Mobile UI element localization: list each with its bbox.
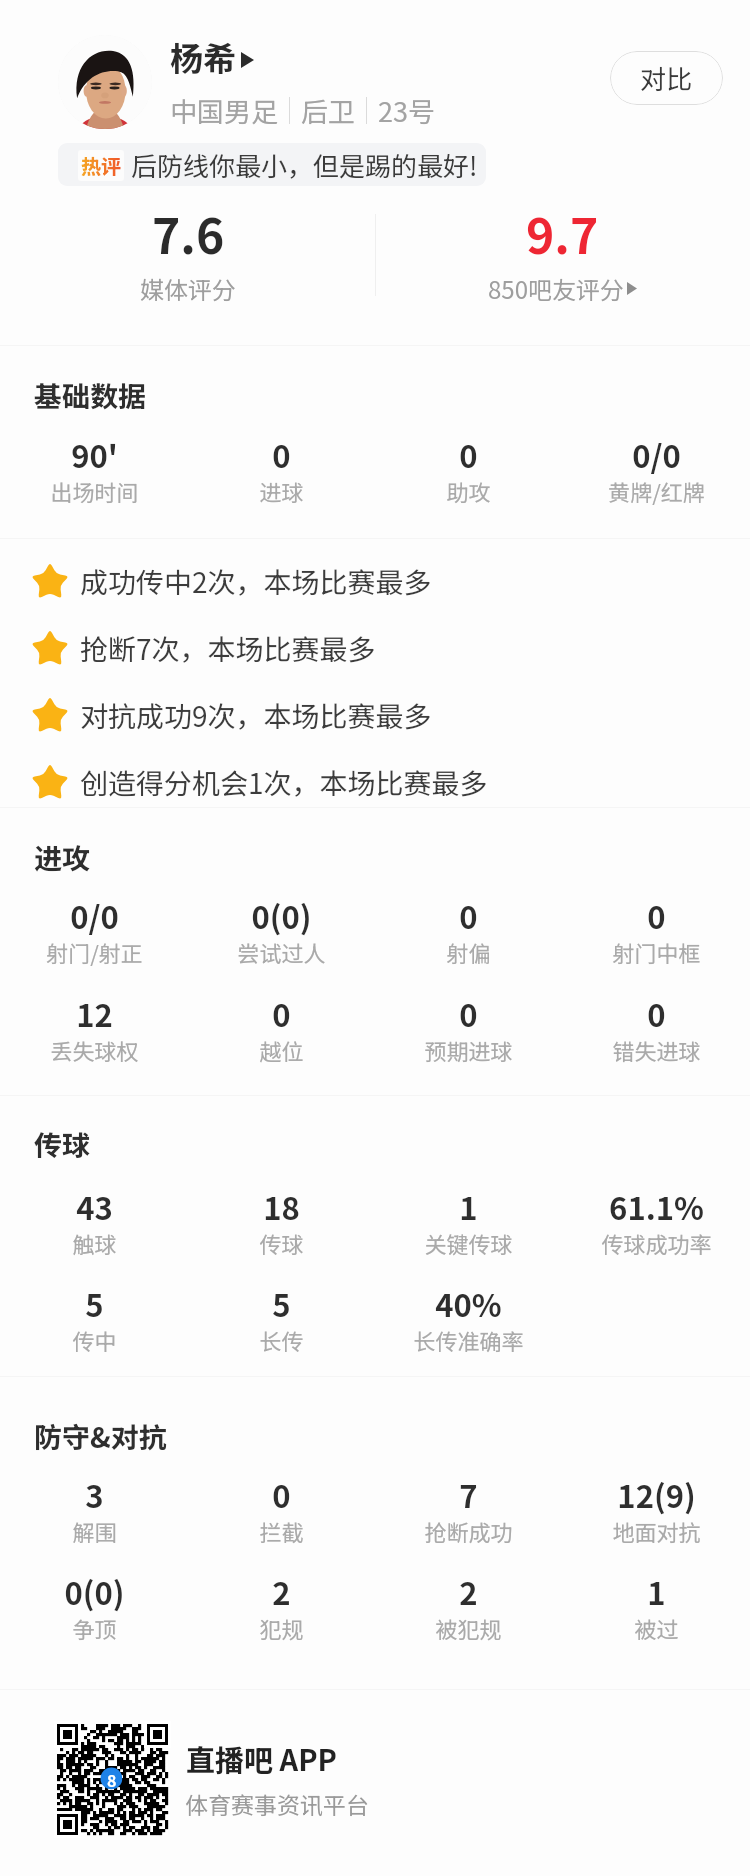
button[interactable]: 对比 [610,51,723,105]
staticText: 长传 [259,1324,304,1356]
staticText: 0/0 [70,893,119,938]
staticText: 热评 [81,151,121,180]
staticText: 传球成功率 [601,1227,712,1259]
staticText: 防守&对抗 [34,1416,167,1457]
button[interactable]: 热评 [58,143,486,186]
staticText: 18 [263,1184,300,1229]
staticText: 杨希 [170,33,236,81]
button[interactable]: 12 [1,991,187,1068]
staticText: 传球 [34,1124,91,1165]
button[interactable]: Player avatar [58,35,152,129]
button[interactable]: 2 [188,1569,374,1646]
button[interactable]: 0 [188,1472,374,1549]
staticText: 解围 [72,1515,117,1547]
staticText: 对比 [640,59,693,97]
button[interactable]: 1 [563,1569,749,1646]
button[interactable]: 0 [375,991,561,1068]
staticText: 地面对抗 [612,1515,701,1547]
button[interactable]: 2 [375,1569,561,1646]
staticText: 犯规 [259,1612,304,1644]
staticText: 3 [85,1472,104,1517]
button[interactable]: 抢断7次，本场比赛最多 [0,615,750,681]
button[interactable]: 7.6 [0,198,375,306]
button[interactable]: 0 [375,432,561,509]
button[interactable]: 成功传中2次，本场比赛最多 [0,548,750,614]
staticText: 0 [272,1472,291,1517]
staticText: 被犯规 [435,1612,502,1644]
button[interactable]: 0 [563,893,749,970]
button[interactable]: 40% [375,1281,561,1358]
staticText: 0 [647,991,666,1036]
button[interactable]: QR code [57,1724,168,1835]
staticText: 7 [459,1472,478,1517]
staticText: 越位 [259,1034,304,1066]
staticText: 助攻 [446,475,491,507]
button[interactable]: 1 [375,1184,561,1261]
staticText: 成功传中2次，本场比赛最多 [80,561,432,602]
button[interactable]: 5 [188,1281,374,1358]
staticText: 5 [85,1281,104,1326]
button[interactable]: 0 [375,893,561,970]
staticText: 拦截 [259,1515,304,1547]
staticText: 8 [107,1768,117,1791]
staticText: 43 [76,1184,113,1229]
staticText: 5 [272,1281,291,1326]
staticText: 23号 [378,91,435,130]
staticText: 黄牌/红牌 [608,475,705,507]
button[interactable]: 0 [188,432,374,509]
staticText: 1 [459,1184,478,1229]
staticText: 创造得分机会1次，本场比赛最多 [80,762,488,803]
button[interactable]: 0/0 [563,432,749,509]
button[interactable]: 12(9) [563,1472,749,1549]
staticText: 长传准确率 [413,1324,524,1356]
button[interactable]: 3 [1,1472,187,1549]
button[interactable]: 7 [375,1472,561,1549]
button[interactable]: 18 [188,1184,374,1261]
staticText: 0 [459,432,478,477]
staticText: 进攻 [34,837,91,878]
staticText: 射门/射正 [46,936,143,968]
button[interactable]: 5 [1,1281,187,1358]
staticText: 错失进球 [612,1034,701,1066]
staticText: 被过 [634,1612,679,1644]
staticText: 传球 [259,1227,304,1259]
staticText: 抢断7次，本场比赛最多 [80,628,376,669]
button[interactable]: 0(0) [1,1569,187,1646]
button[interactable]: 61.1% [563,1184,749,1261]
staticText: 61.1% [609,1184,704,1229]
staticText: 7.6 [152,198,225,268]
button[interactable]: 0/0 [1,893,187,970]
staticText: 出场时间 [50,475,139,507]
button[interactable]: 43 [1,1184,187,1261]
staticText: 2 [272,1569,291,1614]
staticText: 0(0) [64,1569,125,1614]
staticText: 0 [272,991,291,1036]
button[interactable]: 0 [188,991,374,1068]
staticText: 关键传球 [424,1227,513,1259]
button[interactable]: 0(0) [188,893,374,970]
staticText: 0 [647,893,666,938]
staticText: 0 [459,893,478,938]
staticText: 后防线你最小，但是踢的最好! [131,146,478,184]
staticText: 中国男足 [170,91,278,130]
button[interactable]: 90' [1,432,187,509]
staticText: 丢失球权 [50,1034,139,1066]
staticText: 对抗成功9次，本场比赛最多 [80,695,432,736]
staticText: 直播吧 APP [186,1737,337,1779]
staticText: 0 [459,991,478,1036]
staticText: 850吧友评分 [488,271,624,306]
staticText: 射门中框 [612,936,701,968]
button[interactable]: 0 [563,991,749,1068]
button[interactable]: 杨希 [170,33,254,81]
button[interactable]: 创造得分机会1次，本场比赛最多 [0,749,750,815]
button[interactable]: 9.7 [375,198,750,306]
button[interactable]: 对抗成功9次，本场比赛最多 [0,682,750,748]
staticText: 争顶 [72,1612,117,1644]
staticText: 2 [459,1569,478,1614]
staticText: 射偏 [446,936,491,968]
staticText: 抢断成功 [424,1515,513,1547]
staticText: 0(0) [251,893,312,938]
staticText: 触球 [72,1227,117,1259]
staticText: 体育赛事资讯平台 [185,1787,369,1820]
staticText: 40% [435,1281,502,1326]
